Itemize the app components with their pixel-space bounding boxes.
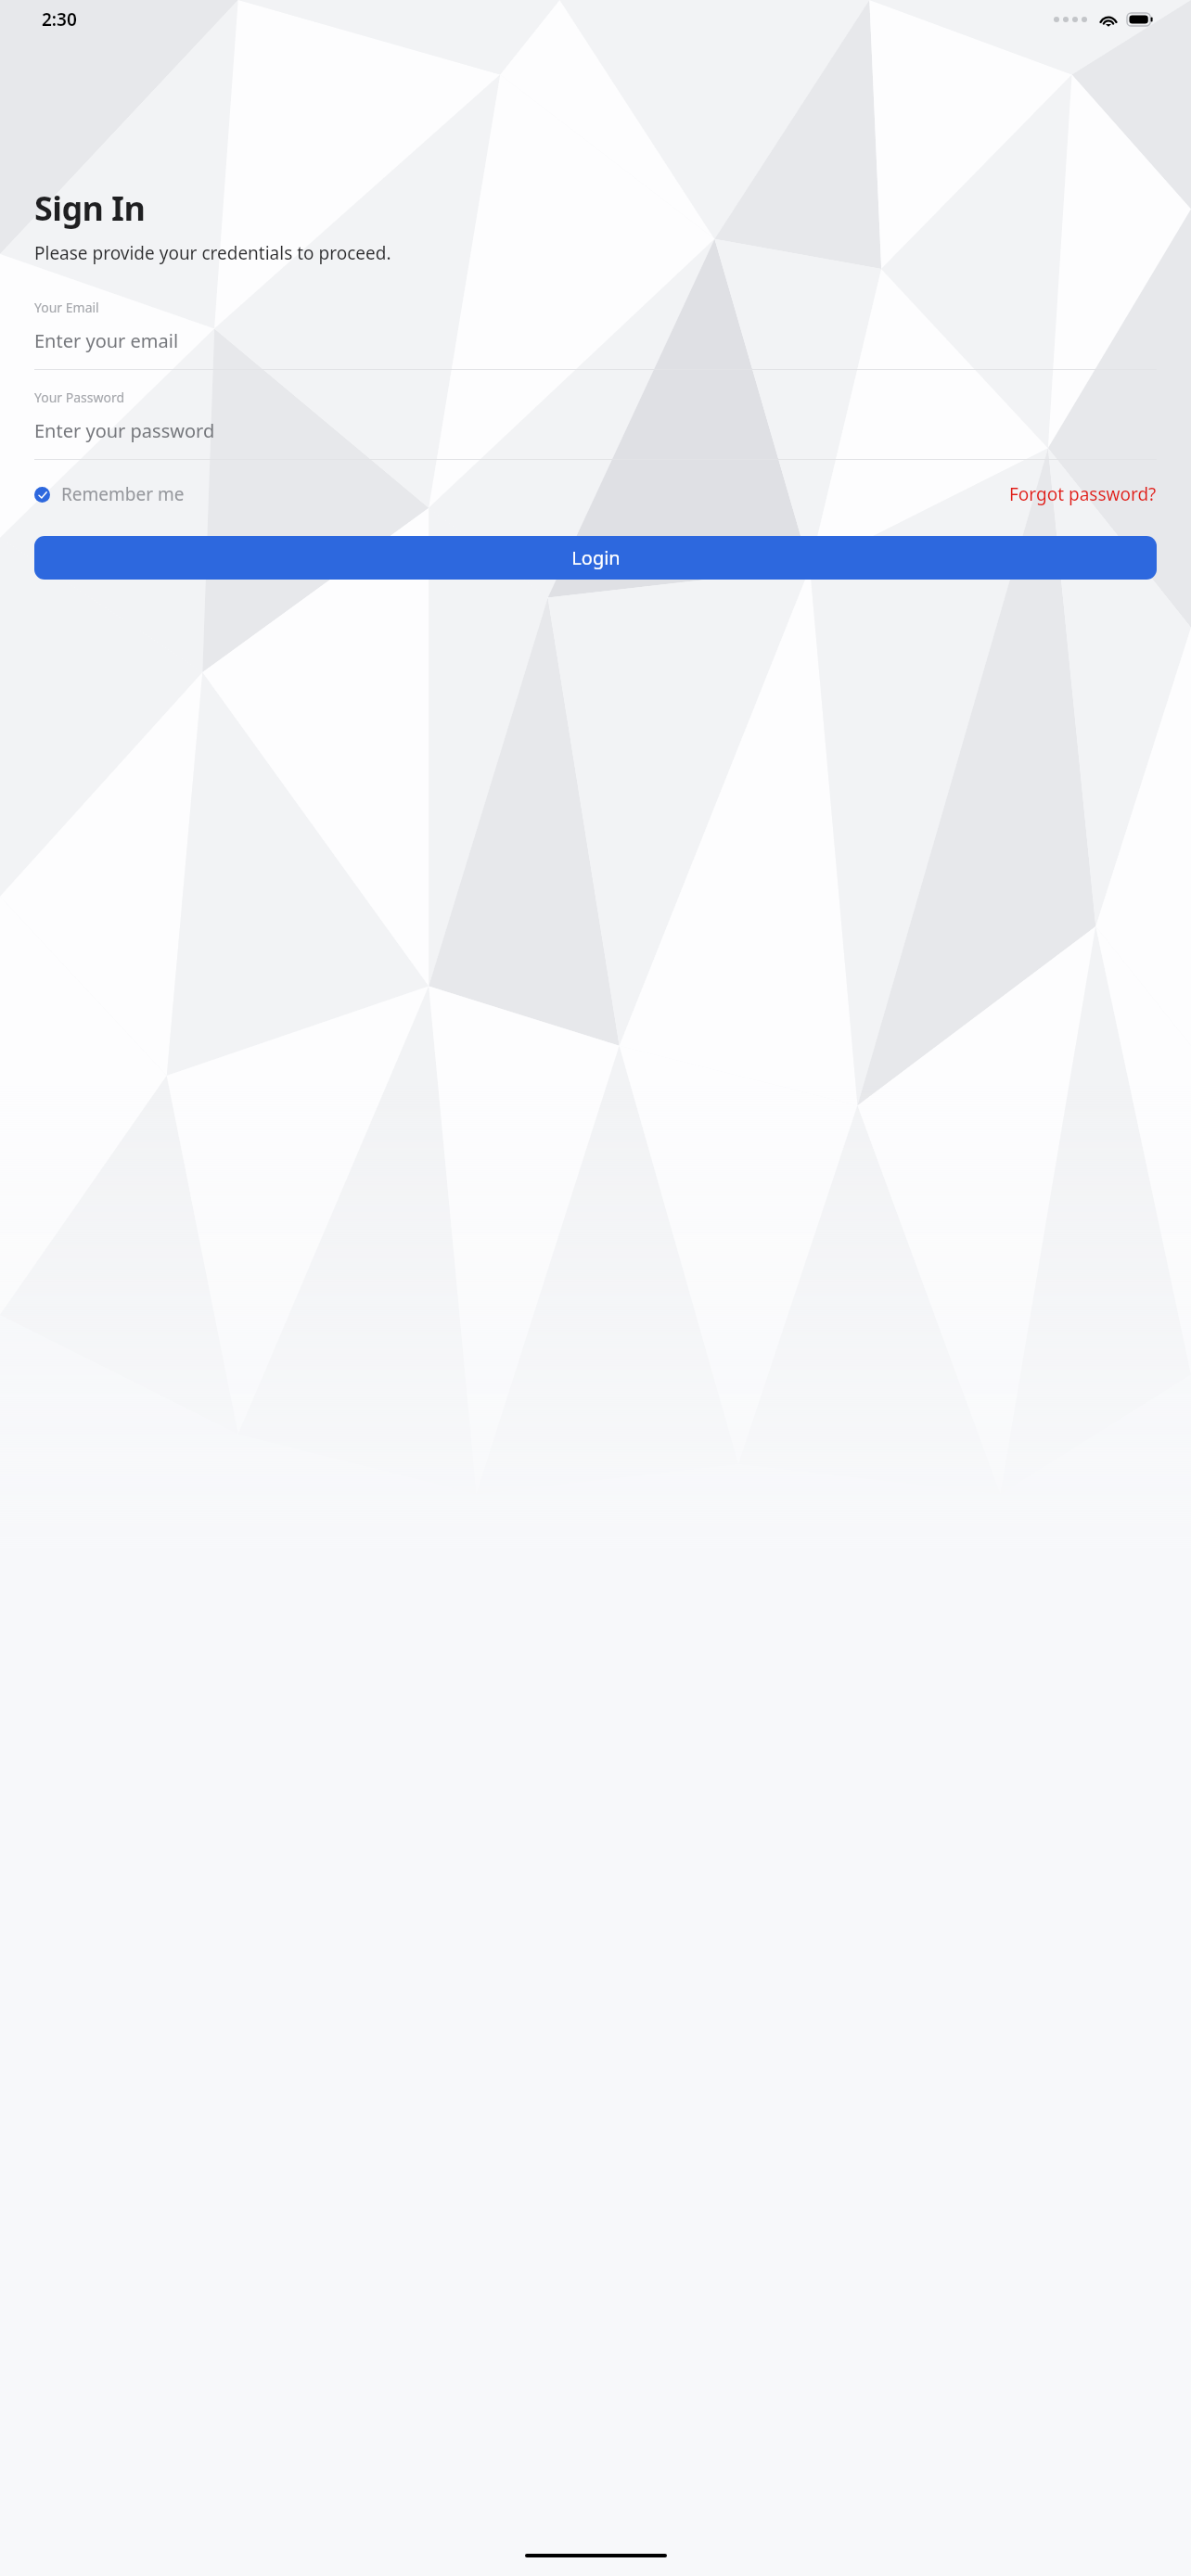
button[interactable]: Your Email <box>34 299 1157 370</box>
staticText: Enter your email <box>34 328 179 353</box>
staticText: Sign In <box>34 185 146 231</box>
staticText: Login <box>571 545 621 570</box>
staticText: 2:30 <box>42 7 77 32</box>
staticText: Your Password <box>34 389 125 406</box>
button[interactable]: Forgot password? <box>1009 482 1157 506</box>
button[interactable]: Login <box>34 536 1157 580</box>
staticText: Enter your password <box>34 418 215 443</box>
button[interactable]: Remember me <box>34 482 185 506</box>
staticText: Your Email <box>34 299 99 316</box>
staticText: Remember me <box>61 482 185 506</box>
button[interactable]: Your Password <box>34 389 1157 460</box>
staticText: Please provide your credentials to proce… <box>34 241 391 265</box>
